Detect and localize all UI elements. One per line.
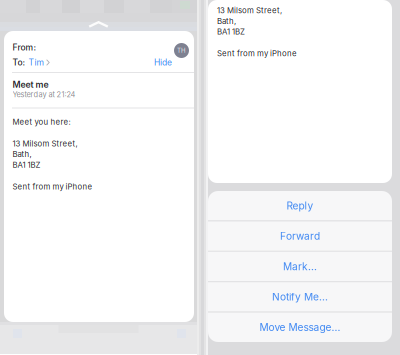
- staticText: Bath,: [12, 149, 31, 159]
- staticText: Sent from my iPhone: [12, 182, 92, 191]
- staticText: Reply: [286, 200, 313, 212]
- button[interactable]: Hide: [154, 58, 172, 67]
- staticText: Hide: [154, 57, 172, 68]
- staticText: BA1 1BZ: [12, 160, 40, 170]
- button[interactable]: Mark...: [208, 252, 392, 281]
- staticText: Forward: [280, 230, 320, 242]
- staticText: Mark...: [283, 260, 317, 273]
- staticText: Move Message...: [259, 321, 340, 333]
- staticText: Meet you here:: [12, 117, 70, 126]
- staticText: Tim: [28, 57, 43, 68]
- button[interactable]: Reply: [208, 191, 392, 220]
- button[interactable]: Move Message...: [208, 313, 392, 342]
- staticText: Bath,: [217, 16, 236, 26]
- button[interactable]: Notify Me...: [208, 282, 392, 312]
- button[interactable]: Forward: [208, 221, 392, 251]
- staticText: 13 Milsom Street,: [12, 139, 77, 148]
- button[interactable]: Tim: [28, 57, 50, 68]
- staticText: From:: [12, 42, 36, 53]
- staticText: Yesterday at 21:24: [12, 90, 75, 99]
- staticText: TH: [177, 47, 186, 54]
- staticText: Sent from my iPhone: [217, 49, 297, 58]
- staticText: BA1 1BZ: [217, 27, 245, 36]
- staticText: To:: [12, 57, 25, 68]
- staticText: Notify Me...: [272, 291, 328, 303]
- staticText: Meet me: [12, 79, 48, 90]
- staticText: 13 Milsom Street,: [217, 6, 282, 15]
